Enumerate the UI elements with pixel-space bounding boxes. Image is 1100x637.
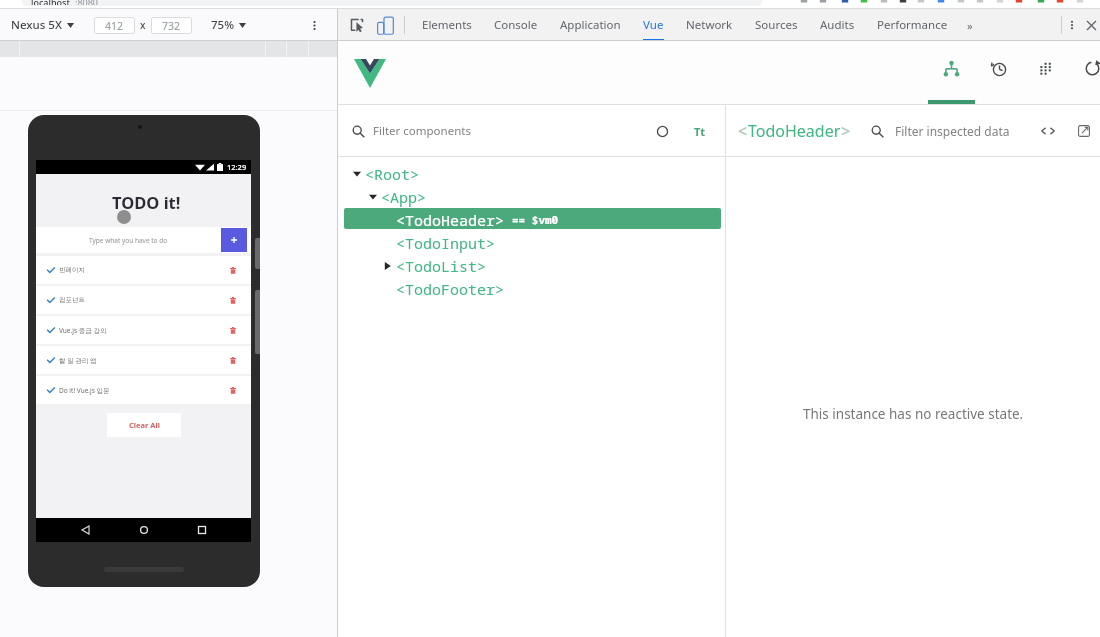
button[interactable]: Delete — [227, 385, 238, 396]
staticText: 732 — [162, 19, 181, 33]
staticText: Filter components — [373, 123, 471, 139]
button[interactable]: Address bar — [22, 0, 762, 6]
button[interactable]: Nexus 5X — [9, 13, 76, 37]
button[interactable]: <App> — [338, 185, 725, 208]
staticText: Clear All — [129, 420, 160, 430]
staticText: Type what you have to do — [89, 236, 168, 245]
button[interactable]: Open in editor — [1071, 120, 1097, 142]
staticText: > — [841, 120, 851, 142]
button[interactable]: Performance — [866, 9, 959, 41]
button[interactable]: 75% — [209, 13, 248, 37]
button[interactable]: Network — [675, 9, 744, 41]
staticText: Do it! Vue.js 입문 — [59, 386, 110, 395]
button[interactable]: Recents — [192, 520, 212, 540]
button[interactable]: Type what you have to do — [36, 227, 221, 253]
button[interactable]: Refresh — [1069, 41, 1100, 105]
button[interactable]: <TodoList> — [338, 254, 725, 277]
staticText: TODO it! — [112, 191, 181, 213]
staticText: Performance — [877, 17, 948, 33]
button[interactable]: Timeline — [975, 41, 1022, 105]
button[interactable]: Delete — [227, 295, 238, 306]
staticText: <App> — [381, 187, 427, 207]
button[interactable]: Vuex — [1022, 41, 1069, 105]
staticText: Tt — [694, 124, 706, 139]
button[interactable]: <TodoInput> — [338, 231, 725, 254]
staticText: <Root> — [365, 164, 420, 184]
staticText: 컴포넌트 — [59, 296, 85, 304]
button[interactable]: Clear All — [107, 413, 181, 437]
staticText: 할 일 관리 앱 — [59, 356, 97, 365]
staticText: <TodoFooter> — [396, 279, 505, 299]
staticText: Console — [494, 17, 538, 33]
button[interactable]: Filter components — [373, 123, 651, 139]
button[interactable]: 할 일 관리 앱 — [36, 346, 251, 374]
staticText: 75% — [211, 17, 234, 33]
staticText: Nexus 5X — [11, 17, 62, 33]
button[interactable]: Home — [134, 520, 154, 540]
staticText: Filter inspected data — [895, 123, 1010, 139]
button[interactable]: Toggle device toolbar — [374, 14, 396, 36]
button[interactable]: Delete — [227, 355, 238, 366]
button[interactable]: Delete — [227, 265, 238, 276]
button[interactable]: Console — [483, 9, 549, 41]
staticText: localhost — [31, 0, 70, 5]
staticText: Application — [560, 17, 621, 33]
button[interactable]: Add todo — [221, 228, 247, 252]
staticText: » — [967, 18, 973, 33]
button[interactable]: Vue — [632, 9, 675, 41]
staticText: :8080 — [75, 0, 99, 5]
button[interactable]: 412 — [94, 17, 135, 34]
button[interactable]: More tabs — [959, 9, 981, 41]
button[interactable]: 732 — [151, 17, 192, 34]
button[interactable]: <TodoFooter> — [338, 277, 725, 300]
button[interactable]: Audits — [809, 9, 866, 41]
staticText: Sources — [755, 17, 798, 33]
staticText: 빈페이지 — [59, 266, 85, 274]
button[interactable]: Select component — [651, 120, 673, 142]
button[interactable]: Inspect DOM — [1034, 120, 1062, 142]
button[interactable]: Sources — [744, 9, 809, 41]
button[interactable]: <TodoHeader> — [338, 208, 725, 231]
button[interactable]: Inspect element — [346, 14, 368, 36]
button[interactable]: Vue.js 중급 강의 — [36, 316, 251, 344]
staticText: 412 — [105, 19, 124, 33]
button[interactable]: Customize and control DevTools — [1062, 15, 1082, 35]
button[interactable]: More options — [303, 14, 325, 36]
button[interactable]: 컴포넌트 — [36, 286, 251, 314]
button[interactable]: Back — [75, 520, 95, 540]
button[interactable]: Components — [928, 41, 975, 105]
staticText: Network — [686, 17, 733, 33]
button[interactable]: Elements — [411, 9, 483, 41]
staticText: == $vm0 — [512, 212, 559, 227]
button[interactable]: Application — [549, 9, 632, 41]
staticText: Audits — [820, 17, 855, 33]
staticText: Vue.js 중급 강의 — [59, 326, 107, 335]
staticText: <TodoInput> — [396, 233, 496, 253]
staticText: 12:29 — [227, 162, 247, 172]
staticText: <TodoList> — [396, 256, 487, 276]
button[interactable]: Close DevTools — [1082, 16, 1100, 34]
staticText: TodoHeader — [748, 120, 841, 142]
button[interactable]: 빈페이지 — [36, 256, 251, 284]
staticText: < — [738, 120, 748, 142]
button[interactable]: Filter inspected data — [895, 123, 1034, 139]
button[interactable]: Delete — [227, 325, 238, 336]
staticText: <TodoHeader> — [396, 210, 505, 230]
button[interactable]: <Root> — [338, 162, 725, 185]
staticText: Elements — [422, 17, 472, 33]
staticText: This instance has no reactive state. — [803, 405, 1024, 423]
staticText: Vue — [643, 17, 664, 33]
button[interactable]: Format component names — [689, 120, 711, 142]
button[interactable]: Do it! Vue.js 입문 — [36, 376, 251, 404]
staticText: x — [140, 18, 146, 32]
